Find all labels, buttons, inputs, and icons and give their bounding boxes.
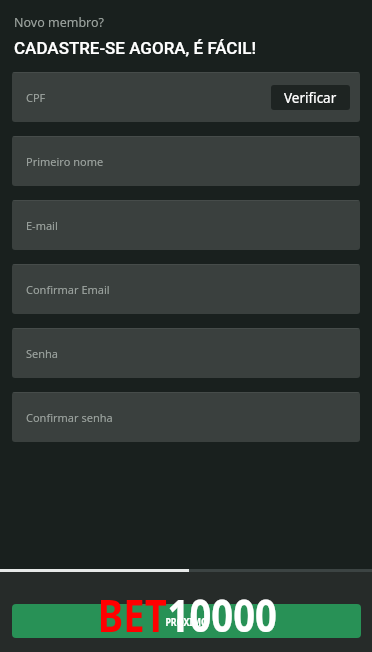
staticText: BET: [98, 584, 167, 645]
button[interactable]: Confirmar senha: [12, 392, 360, 442]
button[interactable]: CPF: [12, 72, 360, 122]
staticText: Confirmar senha: [26, 410, 113, 425]
staticText: CPF: [26, 90, 46, 105]
staticText: Senha: [26, 346, 59, 361]
staticText: E-mail: [26, 218, 58, 233]
button[interactable]: E-mail: [12, 200, 360, 250]
button[interactable]: Confirmar Email: [12, 264, 360, 314]
button[interactable]: Verificar: [271, 85, 350, 110]
other: BET10000: [98, 584, 277, 645]
button[interactable]: Senha: [12, 328, 360, 378]
staticText: PRÓXIMO: [165, 614, 209, 629]
staticText: Confirmar Email: [26, 282, 110, 297]
staticText: Novo membro?: [14, 14, 104, 31]
button[interactable]: PRÓXIMO: [12, 604, 361, 638]
staticText: Verificar: [284, 89, 337, 107]
staticText: Primeiro nome: [26, 154, 104, 169]
button[interactable]: Primeiro nome: [12, 136, 360, 186]
staticText: 10000: [167, 584, 277, 645]
staticText: CADASTRE-SE AGORA, É FÁCIL!: [14, 38, 256, 58]
